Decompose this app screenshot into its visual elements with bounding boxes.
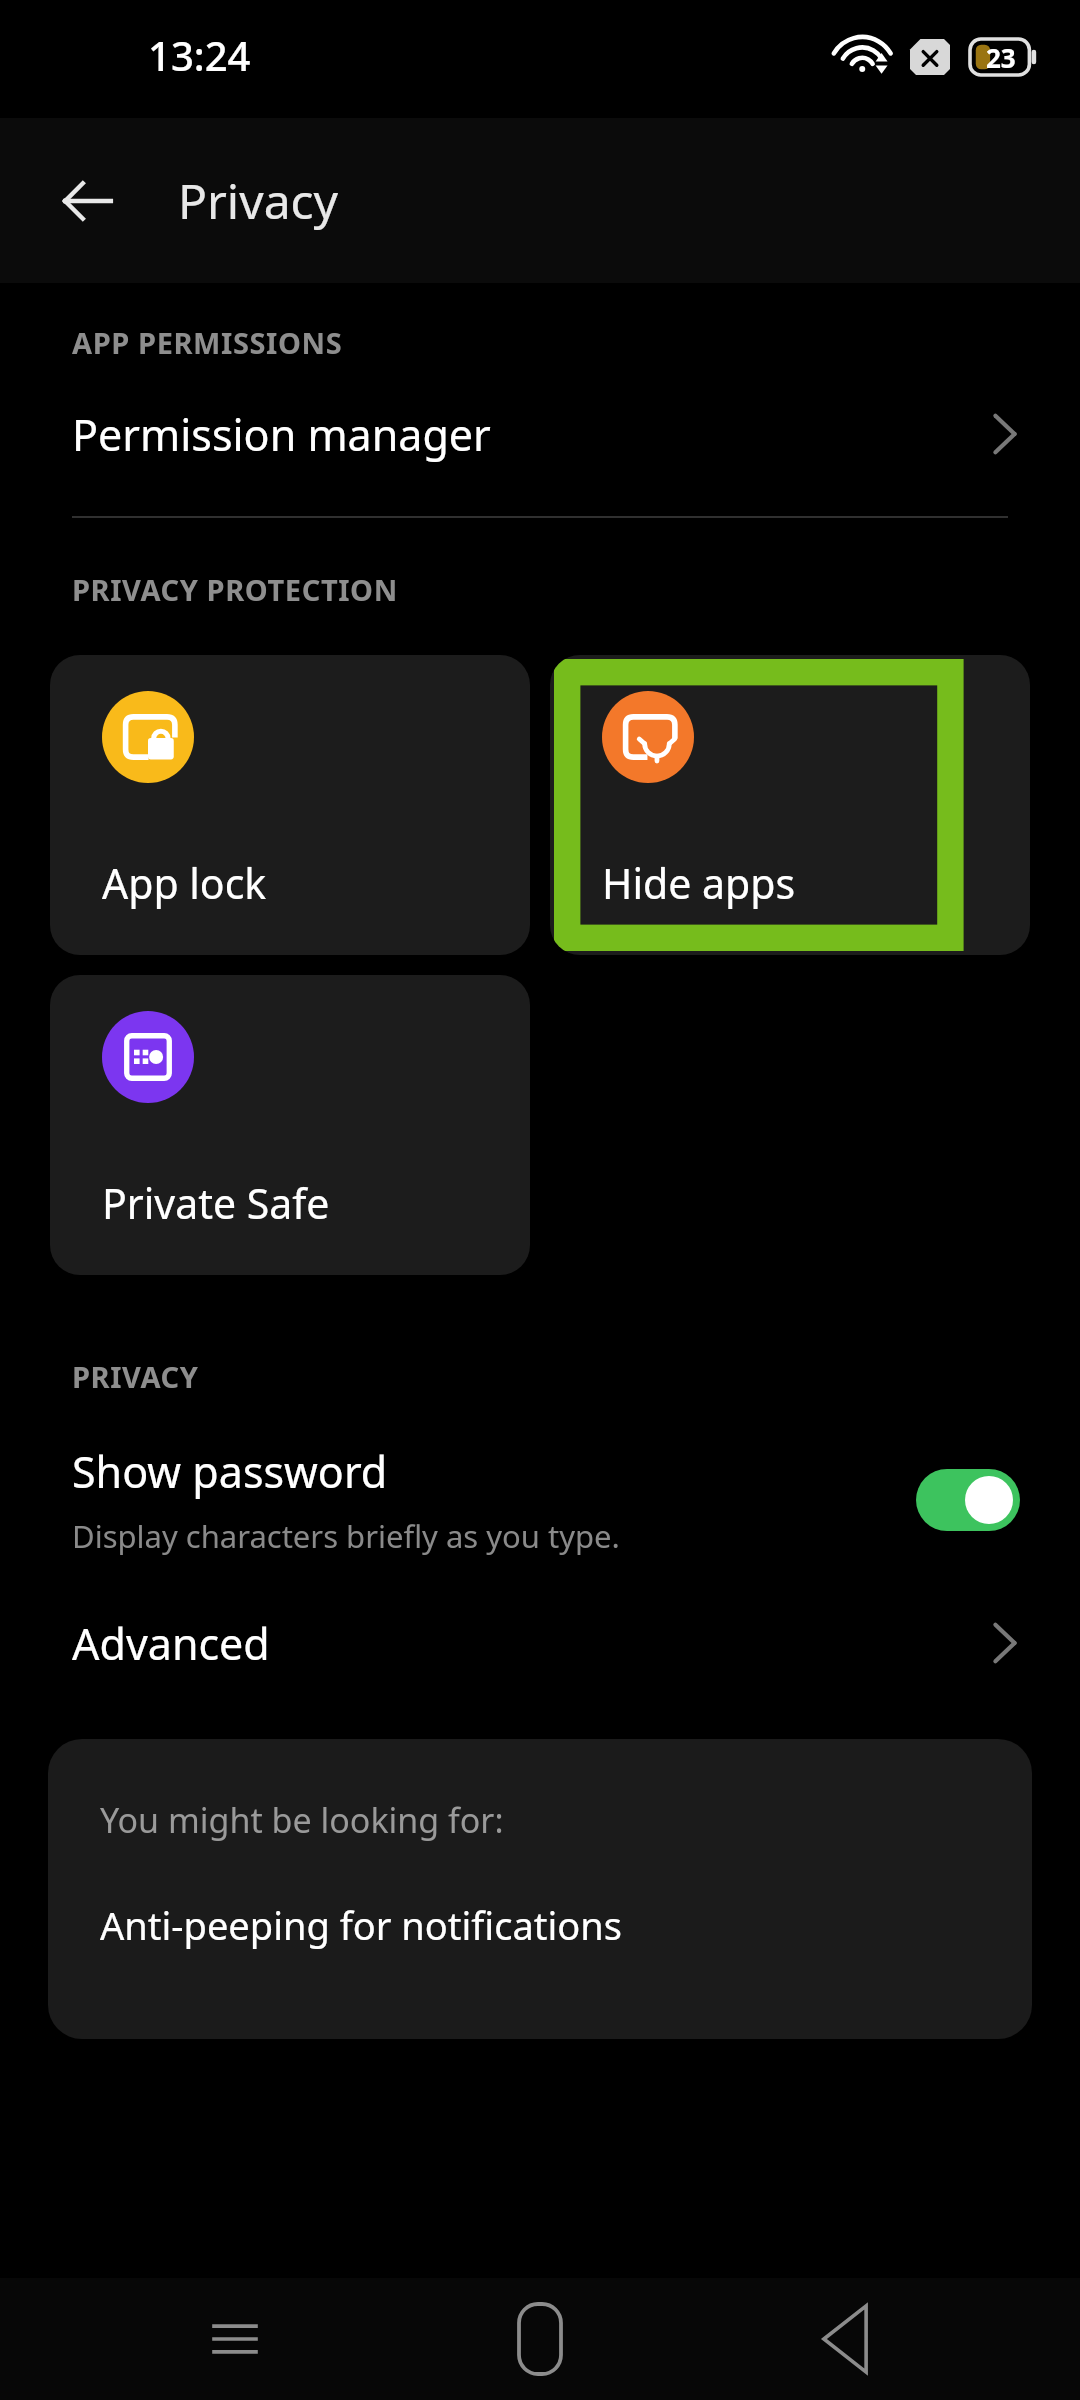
staticText: PRIVACY PROTECTION	[72, 570, 398, 609]
button[interactable]: Hide apps	[550, 655, 1030, 955]
staticText: PRIVACY	[72, 1357, 199, 1396]
staticText: Hide apps	[602, 855, 796, 911]
staticText: Display characters briefly as you type.	[72, 1515, 620, 1557]
staticText: Advanced	[72, 1614, 270, 1673]
button[interactable]: Back	[775, 2284, 915, 2394]
button[interactable]: Private Safe	[50, 975, 530, 1275]
staticText: Anti-peeping for notifications	[100, 1899, 622, 1951]
staticText: Private Safe	[102, 1175, 330, 1231]
staticText: You might be looking for:	[100, 1797, 504, 1843]
staticText: Privacy	[178, 168, 339, 233]
button[interactable]: Home	[470, 2284, 610, 2394]
button[interactable]: Show password	[0, 1436, 1080, 1563]
button[interactable]: Permission manager	[0, 398, 1080, 470]
staticText: App lock	[102, 855, 267, 911]
staticText: Permission manager	[72, 405, 491, 464]
staticText: Show password	[72, 1442, 388, 1501]
staticText: 23	[986, 40, 1016, 75]
staticText: APP PERMISSIONS	[72, 323, 343, 362]
button[interactable]: App lock	[50, 655, 530, 955]
button[interactable]: You might be looking for:	[48, 1739, 1032, 2039]
button[interactable]: Advanced	[0, 1607, 1080, 1679]
button[interactable]: Back	[44, 157, 132, 245]
button[interactable]: Recent apps	[165, 2284, 305, 2394]
staticText: 13:24	[148, 28, 251, 82]
